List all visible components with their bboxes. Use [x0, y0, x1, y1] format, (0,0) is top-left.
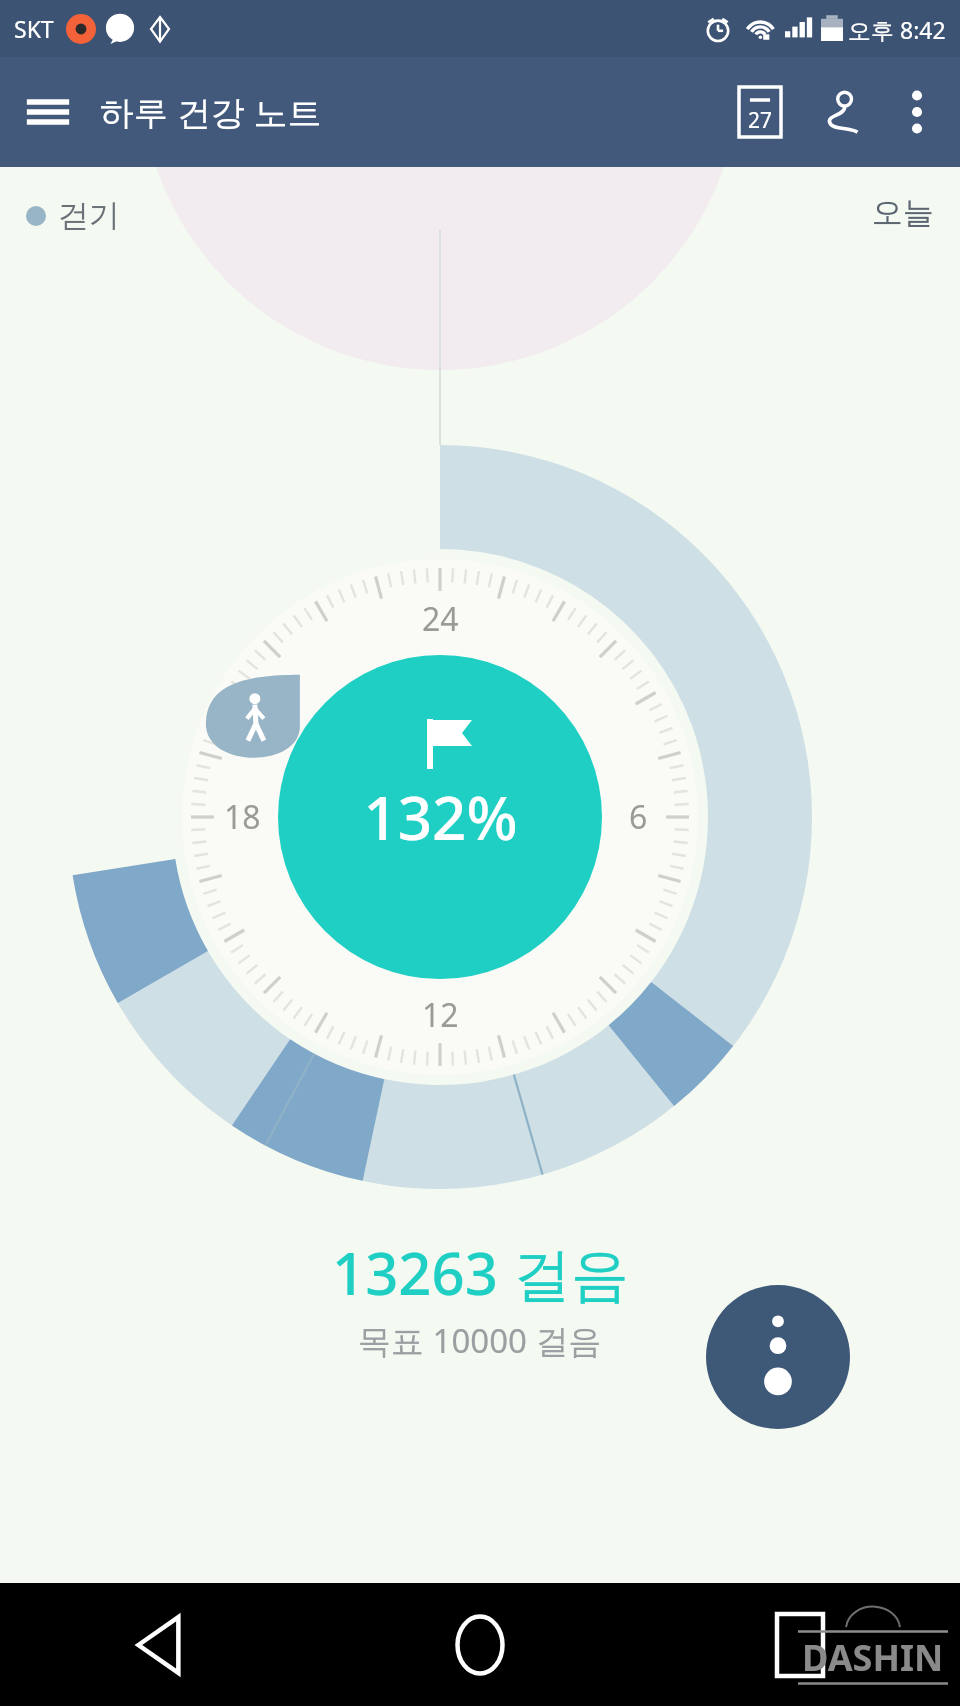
staticText: 27 — [748, 106, 773, 135]
button[interactable]: Calendar — [720, 72, 800, 152]
button[interactable]: Home — [320, 1583, 640, 1706]
staticText: 목표 10000 걸음 — [358, 1318, 602, 1363]
button[interactable]: Recent apps — [640, 1583, 960, 1706]
staticText: 6 — [629, 795, 648, 839]
staticText: 132% — [363, 776, 518, 858]
button[interactable]: 오늘 — [872, 193, 934, 232]
staticText: 오늘 — [872, 193, 934, 232]
button[interactable]: Route — [800, 72, 880, 152]
button[interactable]: More options — [880, 75, 954, 149]
staticText: DASHIN — [802, 1633, 944, 1682]
staticText: 오후 8:42 — [848, 14, 946, 45]
staticText: 18 — [224, 795, 261, 839]
button[interactable]: 걷기 — [26, 196, 120, 235]
staticText: 걷기 — [58, 196, 120, 235]
button[interactable]: Menu — [10, 74, 86, 150]
staticText: 24 — [422, 597, 459, 641]
button[interactable]: Options — [706, 1285, 850, 1429]
staticText: 12 — [422, 993, 459, 1037]
staticText: SKT — [14, 13, 54, 44]
staticText: 하루 건강 노트 — [100, 89, 322, 135]
staticText: 13263 걸음 — [332, 1233, 629, 1312]
button[interactable]: Back — [0, 1583, 320, 1706]
